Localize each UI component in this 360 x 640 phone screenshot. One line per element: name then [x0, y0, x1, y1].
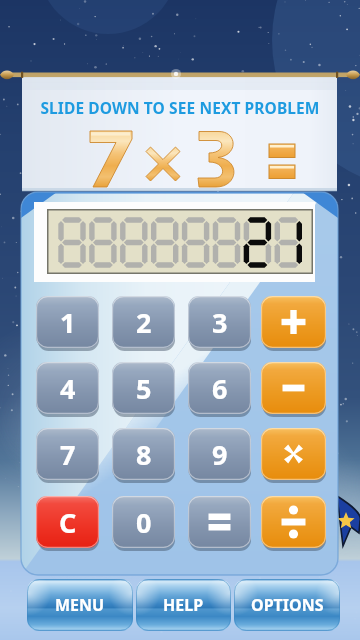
button[interactable]: - [261, 362, 326, 417]
staticText: 3 [212, 304, 228, 341]
staticText: C [59, 504, 77, 541]
button[interactable]: 3 [188, 296, 251, 351]
button[interactable]: OPTIONS [234, 579, 340, 631]
staticText: 7 [60, 436, 76, 473]
button[interactable]: HELP [136, 579, 231, 631]
button[interactable]: + [261, 296, 326, 351]
button[interactable]: MENU [27, 579, 133, 631]
button[interactable]: ÷ [261, 496, 326, 551]
staticText: 4 [60, 370, 76, 407]
button[interactable]: 4 [36, 362, 99, 417]
button[interactable]: 1 [36, 296, 99, 351]
button[interactable]: 2 [112, 296, 175, 351]
button[interactable]: 0 [112, 496, 175, 551]
button[interactable]: 5 [112, 362, 175, 417]
staticText: 0 [136, 504, 152, 541]
staticText: 1 [60, 304, 76, 341]
staticText: MENU [55, 594, 105, 616]
staticText: HELP [163, 594, 204, 616]
button[interactable]: 6 [188, 362, 251, 417]
staticText: SLIDE DOWN TO SEE NEXT PROBLEM [0, 97, 360, 118]
staticText: OPTIONS [251, 594, 324, 616]
staticText: 2 [136, 304, 152, 341]
button[interactable]: 9 [188, 428, 251, 483]
button[interactable]: 8 [112, 428, 175, 483]
button[interactable]: 7 [36, 428, 99, 483]
staticText: 8 [136, 436, 152, 473]
button[interactable]: × [261, 428, 326, 483]
button[interactable]: = [188, 496, 251, 551]
staticText: 5 [136, 370, 152, 407]
button[interactable]: C [36, 496, 99, 551]
staticText: 6 [212, 370, 228, 407]
staticText: 9 [212, 436, 228, 473]
